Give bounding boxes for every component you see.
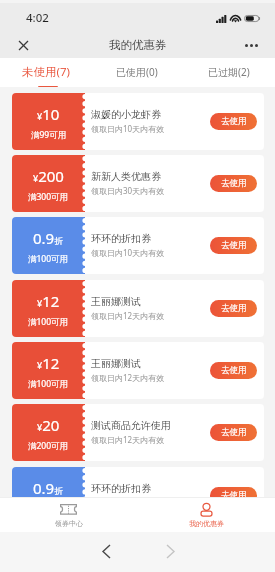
- staticText: 环环的折扣券: [91, 232, 151, 245]
- button[interactable]: Back: [93, 538, 119, 564]
- staticText: 领取日内12天内有效: [91, 310, 165, 321]
- staticText: 满300可用: [28, 191, 69, 203]
- staticText: 去使用: [221, 116, 247, 127]
- button[interactable]: 去使用: [210, 362, 257, 379]
- staticText: 领取日内10天内有效: [91, 247, 165, 258]
- staticText: 已使用(0): [116, 65, 158, 79]
- staticText: 去使用: [221, 365, 247, 376]
- staticText: ¥12: [37, 291, 60, 311]
- button[interactable]: ¥200: [12, 155, 264, 212]
- staticText: 新新人类优惠券: [91, 170, 161, 183]
- button[interactable]: 去使用: [210, 487, 257, 497]
- staticText: ¥12: [37, 353, 60, 373]
- staticText: 领取日内30天内有效: [91, 185, 165, 196]
- button[interactable]: ¥10: [12, 93, 264, 150]
- button[interactable]: 0.9折: [12, 467, 264, 497]
- staticText: 测试商品允许使用: [91, 419, 171, 432]
- staticText: ¥10: [37, 104, 60, 124]
- button[interactable]: More options: [238, 32, 265, 59]
- button[interactable]: 领券中心: [0, 498, 137, 532]
- button[interactable]: ¥12: [12, 342, 264, 399]
- staticText: 满100可用: [28, 316, 69, 328]
- staticText: 去使用: [221, 240, 247, 251]
- staticText: 未使用(7): [22, 64, 70, 80]
- staticText: 4:02: [26, 10, 49, 26]
- button[interactable]: 我的优惠券: [137, 498, 275, 532]
- button[interactable]: Close: [10, 32, 37, 59]
- staticText: 领取日内10天内有效: [91, 123, 165, 134]
- staticText: 我的优惠券: [189, 519, 224, 528]
- staticText: 去使用: [221, 490, 247, 497]
- button[interactable]: 去使用: [210, 113, 257, 130]
- staticText: 去使用: [221, 303, 247, 314]
- button[interactable]: 已使用(0): [91, 58, 183, 87]
- staticText: 已过期(2): [208, 65, 250, 79]
- staticText: 满200可用: [28, 440, 69, 452]
- button[interactable]: 已过期(2): [183, 58, 275, 87]
- button[interactable]: ¥12: [12, 280, 264, 337]
- button[interactable]: 0.9折: [12, 217, 264, 274]
- staticText: 淑媛的小龙虾券: [91, 108, 161, 121]
- staticText: 0.9折: [33, 228, 64, 248]
- staticText: 王丽娜测试: [91, 357, 141, 370]
- staticText: 领券中心: [55, 519, 83, 528]
- staticText: ¥20: [37, 415, 60, 435]
- button[interactable]: Forward: [157, 538, 183, 564]
- button[interactable]: 未使用(7): [0, 58, 91, 87]
- staticText: 我的优惠券: [109, 38, 167, 52]
- button[interactable]: 去使用: [210, 424, 257, 441]
- staticText: 王丽娜测试: [91, 295, 141, 308]
- staticText: 去使用: [221, 178, 247, 189]
- button[interactable]: ¥20: [12, 404, 264, 461]
- staticText: 去使用: [221, 427, 247, 438]
- staticText: 满99可用: [31, 129, 67, 141]
- staticText: 环环的折扣券: [91, 482, 151, 495]
- staticText: 0.9折: [33, 478, 64, 497]
- button[interactable]: 去使用: [210, 237, 257, 254]
- staticText: 满100可用: [28, 378, 69, 390]
- staticText: ¥200: [33, 166, 64, 186]
- button[interactable]: 去使用: [210, 175, 257, 192]
- staticText: 领取日内12天内有效: [91, 434, 165, 445]
- staticText: 领取日内12天内有效: [91, 372, 165, 383]
- button[interactable]: 去使用: [210, 300, 257, 317]
- staticText: 满100可用: [28, 253, 69, 265]
